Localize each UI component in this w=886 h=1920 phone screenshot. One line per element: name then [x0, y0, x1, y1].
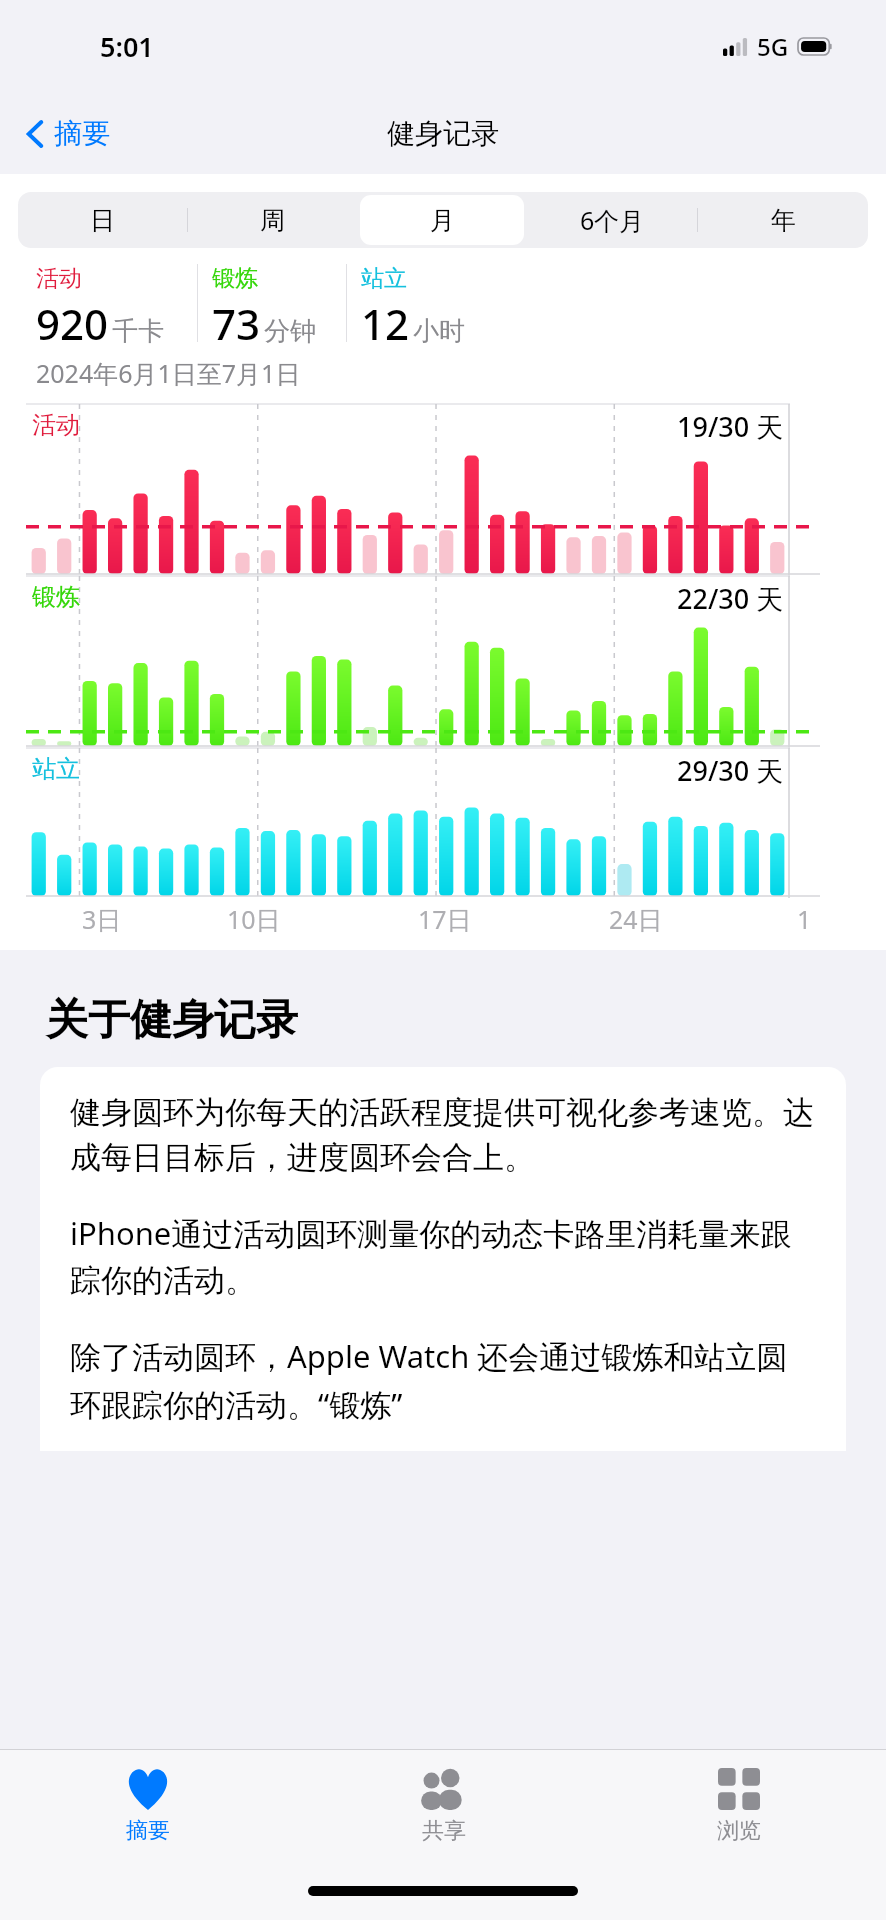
staticText: 月 [430, 205, 455, 236]
staticText: 5:01 [100, 28, 154, 65]
staticText: 29/30 天 [677, 752, 784, 789]
staticText: 关于健身记录 [46, 994, 298, 1047]
staticText: 5G [757, 30, 789, 63]
staticText: 浏览 [717, 1817, 761, 1845]
staticText: 17日 [418, 902, 472, 936]
staticText: 分钟 [264, 315, 316, 348]
staticText: iPhone通过活动圆环测量你的动态卡路里消耗量来跟踪你的活动。 [70, 1212, 816, 1301]
staticText: 站立 [361, 264, 407, 293]
staticText: 健身记录 [387, 116, 499, 151]
staticText: 12 [361, 295, 410, 352]
staticText: 22/30 天 [677, 580, 784, 617]
button[interactable]: 年 [701, 195, 865, 245]
button[interactable]: 月 [360, 195, 524, 245]
button[interactable]: 浏览 [591, 1750, 886, 1862]
staticText: 摘要 [54, 116, 110, 151]
staticText: 年 [771, 205, 796, 236]
staticText: 锻炼 [212, 264, 258, 293]
button[interactable]: 日 [21, 195, 184, 245]
staticText: 24日 [609, 902, 663, 936]
staticText: 除了活动圆环，Apple Watch 还会通过锻炼和站立圆环跟踪你的活动。“锻炼… [70, 1335, 816, 1425]
button[interactable]: 周 [191, 195, 354, 245]
staticText: 73 [212, 295, 261, 352]
staticText: 健身圆环为你每天的活跃程度提供可视化参考速览。达成每日目标后，进度圆环会合上。 [70, 1093, 816, 1178]
staticText: 站立 [32, 754, 80, 784]
button[interactable]: 6个月 [530, 195, 694, 245]
staticText: 19/30 天 [677, 408, 784, 445]
staticText: 千卡 [112, 315, 164, 348]
staticText: 活动 [36, 264, 82, 293]
staticText: 6个月 [580, 203, 645, 237]
button[interactable]: 摘要 [0, 1750, 296, 1862]
staticText: 锻炼 [32, 582, 80, 612]
staticText: 摘要 [126, 1817, 170, 1845]
staticText: 1 [797, 902, 812, 936]
staticText: 920 [36, 295, 109, 352]
staticText: 10日 [227, 902, 281, 936]
staticText: 3日 [82, 902, 122, 936]
staticText: 活动 [32, 410, 80, 440]
staticText: 2024年6月1日至7月1日 [36, 356, 301, 390]
button[interactable]: 共享 [296, 1750, 591, 1862]
button[interactable]: 摘要 [18, 110, 118, 157]
staticText: 周 [260, 205, 285, 236]
staticText: 小时 [413, 315, 465, 348]
staticText: 日 [90, 205, 115, 236]
staticText: 共享 [422, 1817, 466, 1845]
